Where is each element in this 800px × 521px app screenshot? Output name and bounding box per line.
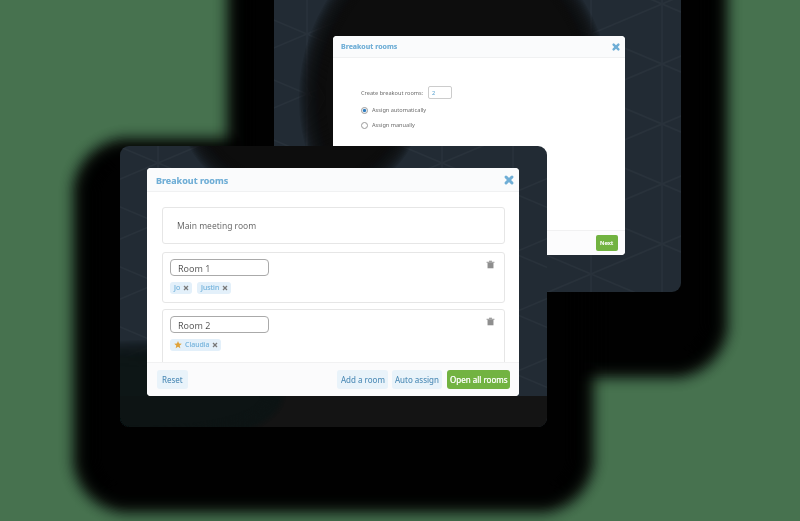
button[interactable]: Close dialog xyxy=(504,175,514,185)
staticText: Assign automatically xyxy=(372,106,427,114)
button[interactable]: Auto assign xyxy=(392,370,442,389)
staticText: Room 1 xyxy=(178,262,211,274)
staticText: Create breakout rooms: xyxy=(361,89,424,97)
button[interactable]: Add a room xyxy=(337,370,388,389)
button[interactable]: Assign automatically xyxy=(361,106,427,114)
staticText: Main meeting room xyxy=(177,220,257,232)
staticText: Room 2 xyxy=(178,319,211,331)
staticText: Jo xyxy=(174,283,181,293)
button[interactable]: Delete room xyxy=(486,260,495,269)
button[interactable]: Jo xyxy=(170,282,192,294)
button[interactable]: Reset xyxy=(157,370,188,389)
staticText: Open all rooms xyxy=(450,374,508,385)
staticText: Reset xyxy=(162,374,183,385)
button[interactable]: Close dialog xyxy=(612,43,620,51)
staticText: Auto assign xyxy=(395,374,439,385)
staticText: Add a room xyxy=(341,374,385,385)
staticText: Breakout rooms xyxy=(156,174,229,186)
staticText: Next xyxy=(600,239,614,247)
button[interactable]: Open all rooms xyxy=(447,370,510,389)
staticText: Claudia xyxy=(185,340,210,350)
staticText: Justin xyxy=(201,283,220,293)
button[interactable]: Assign manually xyxy=(361,121,415,129)
staticText: 2 xyxy=(432,89,436,97)
button[interactable]: Claudia xyxy=(170,339,221,351)
staticText: Breakout rooms xyxy=(341,42,398,52)
button[interactable]: Delete room xyxy=(486,317,495,326)
button[interactable]: Next xyxy=(596,235,618,251)
staticText: Assign manually xyxy=(372,121,415,129)
button[interactable]: Justin xyxy=(197,282,231,294)
